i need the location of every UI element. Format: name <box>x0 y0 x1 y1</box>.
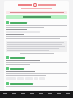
button[interactable]: Site logo <box>6 3 67 7</box>
button[interactable] <box>6 11 67 14</box>
button[interactable] <box>6 56 67 59</box>
button[interactable] <box>6 67 67 70</box>
button[interactable] <box>6 15 67 19</box>
button[interactable] <box>6 82 67 85</box>
button[interactable] <box>6 21 67 24</box>
